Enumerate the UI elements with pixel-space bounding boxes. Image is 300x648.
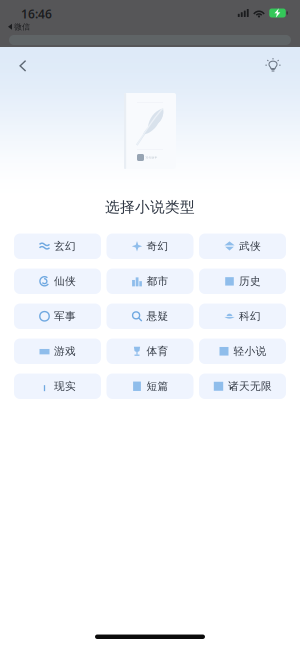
button[interactable]: 军事 bbox=[14, 303, 101, 329]
button[interactable]: 现实 bbox=[14, 373, 101, 399]
staticText: 玄幻 bbox=[54, 240, 76, 253]
staticText: 游戏 bbox=[54, 345, 76, 358]
button[interactable]: 仙侠 bbox=[14, 268, 101, 294]
button[interactable]: 历史 bbox=[199, 268, 286, 294]
staticText: 写作助手 bbox=[146, 156, 158, 159]
staticText: 悬疑 bbox=[146, 310, 168, 323]
staticText: 诸天无限 bbox=[228, 380, 272, 393]
button[interactable]: 体育 bbox=[106, 338, 193, 364]
button[interactable]: 武侠 bbox=[199, 233, 286, 259]
staticText: 现实 bbox=[54, 380, 76, 393]
staticText: 短篇 bbox=[146, 380, 168, 393]
staticText: 16:46 bbox=[21, 6, 52, 22]
staticText: 轻小说 bbox=[233, 345, 266, 358]
button[interactable]: 玄幻 bbox=[14, 233, 101, 259]
staticText: 奇幻 bbox=[146, 240, 168, 253]
button[interactable]: Back bbox=[6, 49, 40, 83]
staticText: 仙侠 bbox=[54, 275, 76, 288]
button[interactable]: 短篇 bbox=[106, 373, 193, 399]
button[interactable]: 科幻 bbox=[199, 303, 286, 329]
button[interactable]: Tips bbox=[256, 49, 290, 83]
staticText: 武侠 bbox=[239, 240, 261, 253]
button[interactable]: 诸天无限 bbox=[199, 373, 286, 399]
staticText: 体育 bbox=[146, 345, 168, 358]
staticText: 选择小说类型 bbox=[105, 198, 195, 216]
staticText: 微信 bbox=[14, 22, 30, 32]
staticText: 军事 bbox=[54, 310, 76, 323]
button[interactable]: 都市 bbox=[106, 268, 193, 294]
staticText: 科幻 bbox=[239, 310, 261, 323]
staticText: 历史 bbox=[239, 275, 261, 288]
staticText: 都市 bbox=[146, 275, 168, 288]
button[interactable]: 悬疑 bbox=[106, 303, 193, 329]
button[interactable]: 游戏 bbox=[14, 338, 101, 364]
button[interactable]: 轻小说 bbox=[199, 338, 286, 364]
button[interactable]: 奇幻 bbox=[106, 233, 193, 259]
